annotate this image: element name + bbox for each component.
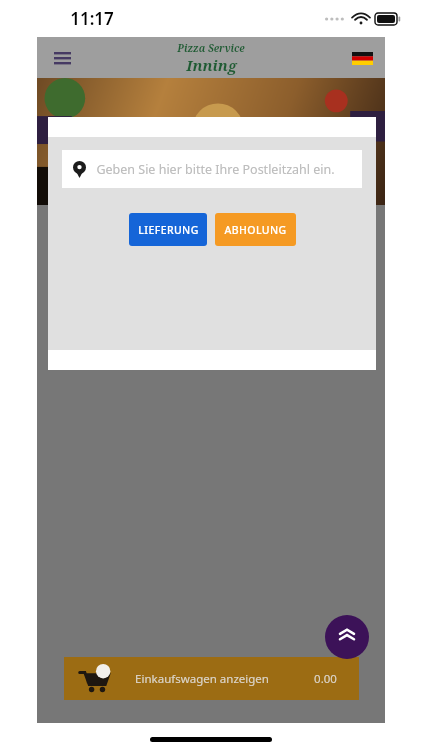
button[interactable]: Menu	[47, 43, 77, 73]
staticText: ALERGIE-INFORMATIONEN	[146, 213, 276, 225]
button[interactable]: ALERGIE-INFORMATIONEN	[54, 214, 368, 236]
button[interactable]: Language	[351, 50, 373, 66]
staticText: ALERGIE-INFORMATIONEN	[146, 219, 276, 231]
button[interactable]: ALERGIE-INFORMATIONEN	[54, 208, 368, 230]
staticText: Inning	[186, 55, 237, 75]
button[interactable]: LIEFERUNG	[129, 213, 207, 246]
staticText: 0.00	[314, 671, 337, 687]
button[interactable]: Einkaufswagen anzeigen	[64, 657, 359, 700]
staticText: Geben Sie hier bitte Ihre Postleitzahl e…	[96, 161, 335, 178]
staticText: Inning	[186, 55, 237, 75]
staticText: Pizza Service	[177, 41, 245, 55]
staticText: ABHOLUNG	[224, 223, 287, 237]
button[interactable]: Menu	[47, 43, 77, 73]
button[interactable]: Geben Sie hier bitte Ihre Postleitzahl e…	[62, 150, 362, 188]
staticText: LIEFERUNG	[138, 223, 199, 237]
staticText: Einkaufswagen anzeigen	[135, 671, 269, 687]
button[interactable]: ABHOLUNG	[215, 213, 296, 246]
button[interactable]: Scroll to top	[325, 615, 369, 659]
button[interactable]: Language	[351, 50, 373, 66]
staticText: 11:17	[70, 7, 114, 30]
staticText: Pizza Service	[177, 41, 245, 55]
